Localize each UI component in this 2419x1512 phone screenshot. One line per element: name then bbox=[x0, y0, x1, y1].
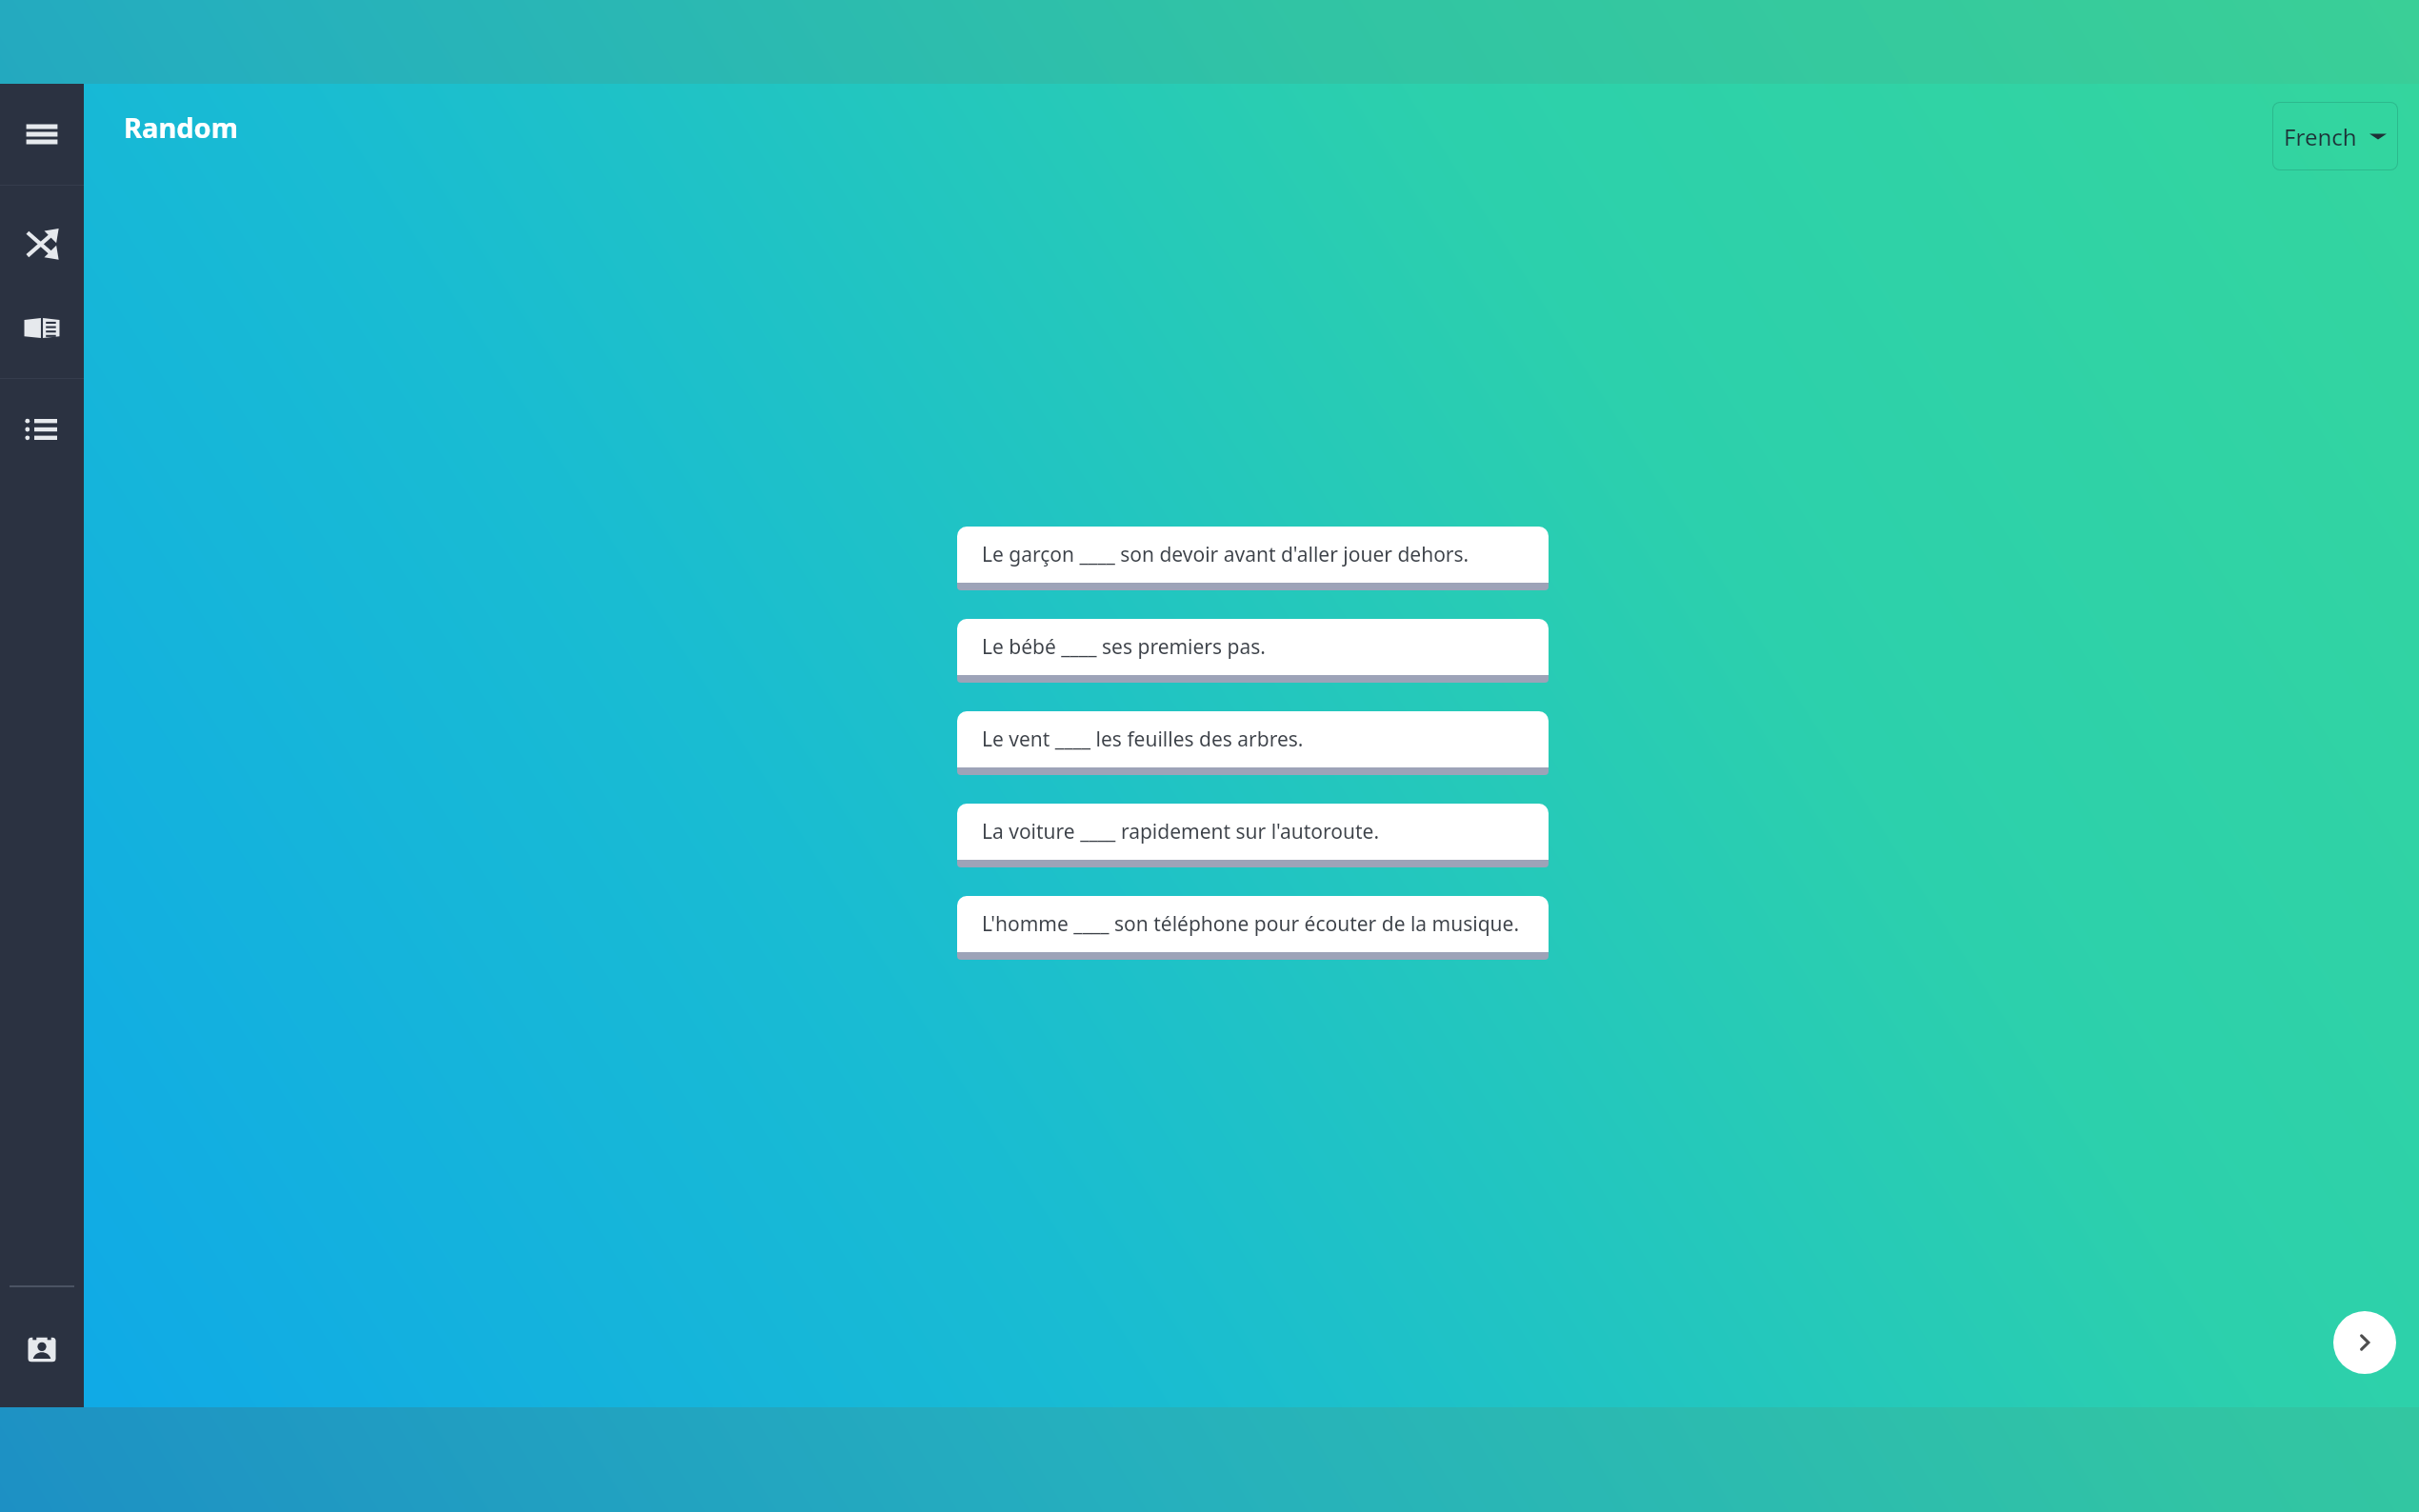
button[interactable]: Random bbox=[124, 109, 238, 146]
button[interactable]: Next bbox=[2333, 1311, 2396, 1374]
button[interactable]: Account bbox=[0, 1312, 84, 1386]
button[interactable]: Le garçon ____ son devoir avant d'aller … bbox=[957, 527, 1549, 590]
staticText: French bbox=[2284, 121, 2357, 152]
button[interactable]: Le vent ____ les feuilles des arbres. bbox=[957, 711, 1549, 775]
button[interactable]: Word list bbox=[0, 392, 84, 467]
staticText: Le garçon ____ son devoir avant d'aller … bbox=[982, 541, 1469, 568]
button[interactable]: Le bébé ____ ses premiers pas. bbox=[957, 619, 1549, 683]
staticText: L'homme ____ son téléphone pour écouter … bbox=[982, 910, 1520, 938]
button[interactable]: La voiture ____ rapidement sur l'autorou… bbox=[957, 804, 1549, 867]
button[interactable]: French bbox=[2272, 102, 2398, 170]
staticText: Le vent ____ les feuilles des arbres. bbox=[982, 726, 1304, 753]
staticText: La voiture ____ rapidement sur l'autorou… bbox=[982, 818, 1380, 846]
button[interactable]: Shuffle bbox=[0, 207, 84, 281]
button[interactable]: Menu bbox=[0, 97, 84, 171]
button[interactable]: L'homme ____ son téléphone pour écouter … bbox=[957, 896, 1549, 960]
button[interactable]: Dictionary bbox=[0, 290, 84, 365]
staticText: Le bébé ____ ses premiers pas. bbox=[982, 633, 1266, 661]
